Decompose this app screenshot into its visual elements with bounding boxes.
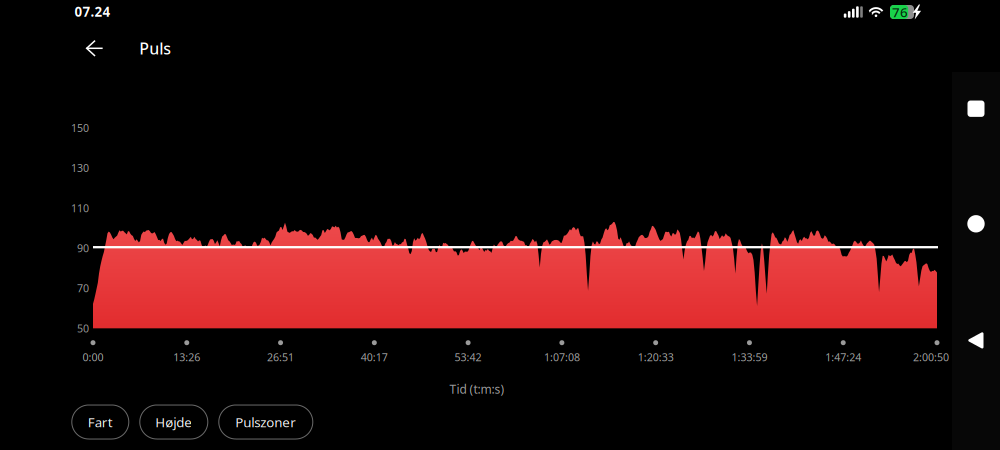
staticText: 40:17 [361,350,388,364]
staticText: 50 [77,321,89,335]
staticText: Puls [139,38,171,59]
staticText: 26:51 [267,350,294,364]
button[interactable]: Pulszoner [219,405,313,439]
staticText: 1:33:59 [731,350,767,364]
staticText: 70 [77,281,89,295]
staticText: 1:20:33 [638,350,674,364]
staticText: 150 [71,121,89,135]
staticText: 1:07:08 [544,350,580,364]
button[interactable]: Back [73,26,117,70]
staticText: 2:00:50 [913,350,949,364]
staticText: Tid (t:m:s) [449,381,504,397]
staticText: 1:47:24 [825,350,861,364]
staticText: 0:00 [82,350,103,364]
staticText: 130 [71,161,89,175]
button[interactable]: Recent apps [954,87,998,131]
button[interactable]: Fart [72,405,129,439]
staticText: 90 [77,241,89,255]
staticText: 07.24 [74,3,110,20]
staticText: Højde [155,413,192,431]
button[interactable]: Home [954,202,998,246]
staticText: Fart [88,413,113,431]
staticText: 76 [892,3,908,21]
staticText: 110 [71,201,89,215]
button[interactable]: Back [0,0,1000,450]
staticText: 53:42 [455,350,482,364]
button[interactable]: Højde [140,405,208,439]
staticText: Pulszoner [235,413,296,431]
staticText: 13:26 [173,350,200,364]
